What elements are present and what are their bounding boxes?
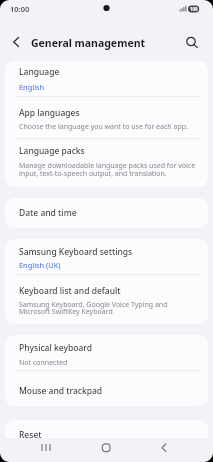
button[interactable] [5,239,208,274]
button[interactable] [146,437,186,462]
staticText: Language [19,66,60,78]
staticText: Mouse and trackpad [19,385,103,397]
button[interactable] [5,198,208,228]
button[interactable] [5,274,208,324]
staticText: Physical keyboard [19,342,92,354]
staticText: Keyboard list and default [19,285,121,297]
staticText: Choose the language you want to use for … [19,122,188,132]
staticText: Microsoft SwiftKey Keyboard [19,307,113,317]
button[interactable] [5,420,208,454]
staticText: Date and time [19,207,77,219]
staticText: Samsung Keyboard, Google Voice Typing an… [19,300,168,310]
staticText: General management [31,36,146,50]
staticText: Samsung Keyboard settings [19,246,133,258]
staticText: English (UK) [19,260,61,270]
button[interactable] [6,31,28,53]
staticText: English [19,82,45,92]
staticText: 100 [190,6,198,12]
button[interactable] [86,437,126,462]
button[interactable] [5,370,208,406]
button[interactable] [5,61,208,96]
staticText: Reset [19,429,42,441]
staticText: 10:00 [10,4,30,14]
button[interactable] [26,437,66,462]
staticText: input, text-to-speech output, and transl… [19,169,167,179]
button[interactable] [180,31,204,53]
button[interactable] [5,138,208,188]
staticText: Manage downloadable language packs used … [19,161,196,171]
staticText: Not connected [19,358,68,368]
button[interactable] [5,335,208,370]
staticText: App languages [19,107,80,119]
button[interactable] [5,96,208,138]
staticText: Language packs [19,145,85,157]
